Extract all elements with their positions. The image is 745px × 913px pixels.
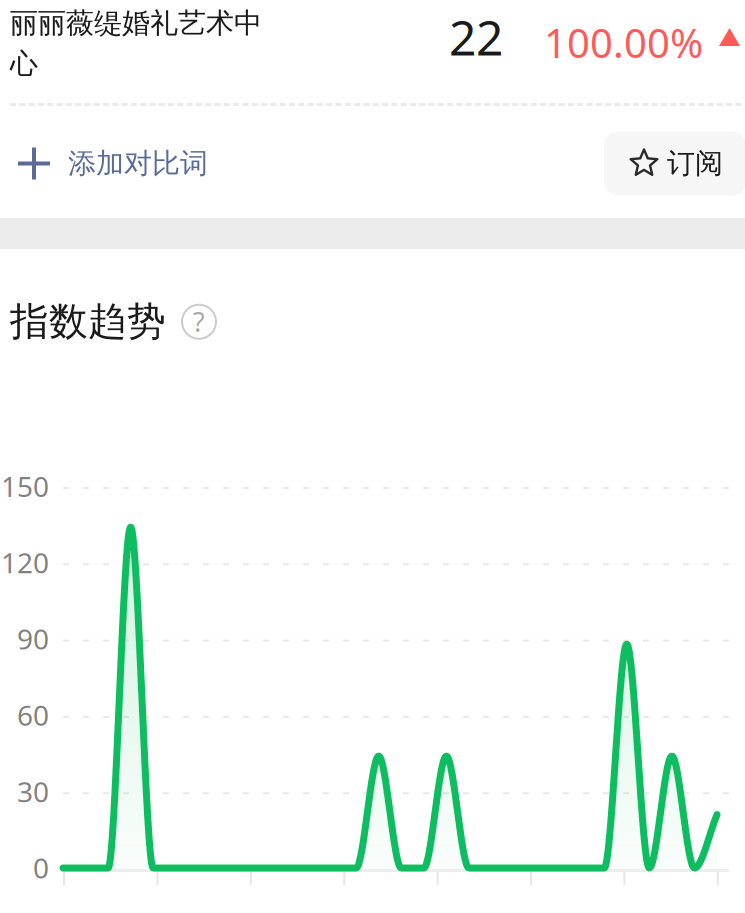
staticText: 0 (33, 849, 49, 886)
staticText: 订阅 (667, 146, 723, 181)
staticText: 添加对比词 (68, 146, 208, 181)
staticText: 30 (17, 773, 49, 810)
staticText: ? (193, 304, 205, 339)
staticText: 60 (17, 696, 49, 734)
button[interactable]: 帮助 (182, 305, 216, 339)
staticText: 90 (17, 620, 49, 657)
button[interactable]: 添加对比词 (0, 130, 208, 197)
staticText: 丽丽薇缇婚礼艺术中心 (10, 6, 262, 81)
staticText: 100.00% (544, 16, 703, 69)
staticText: 150 (1, 467, 49, 505)
staticText: 22 (449, 5, 503, 69)
staticText: 指数趋势 (10, 298, 166, 345)
button[interactable]: 订阅 (604, 131, 745, 195)
staticText: 120 (1, 544, 49, 581)
